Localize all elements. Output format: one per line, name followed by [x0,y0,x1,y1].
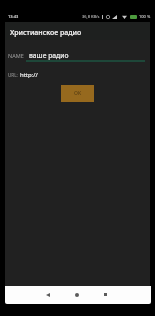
button[interactable]: Back [33,287,62,302]
staticText: 36,8 KB/s [82,14,100,19]
staticText: ваше радио [29,51,69,60]
staticText: 100 % [139,14,151,19]
staticText: OK [74,90,82,97]
staticText: URL: [8,72,18,78]
staticText: NAME [8,52,24,59]
button[interactable]: Home [62,287,91,302]
staticText: Христианское радио [10,28,82,38]
staticText: http:// [20,71,38,79]
button[interactable]: Recent apps [91,287,120,302]
button[interactable]: OK [61,85,94,102]
staticText: 13:43 [8,14,19,19]
